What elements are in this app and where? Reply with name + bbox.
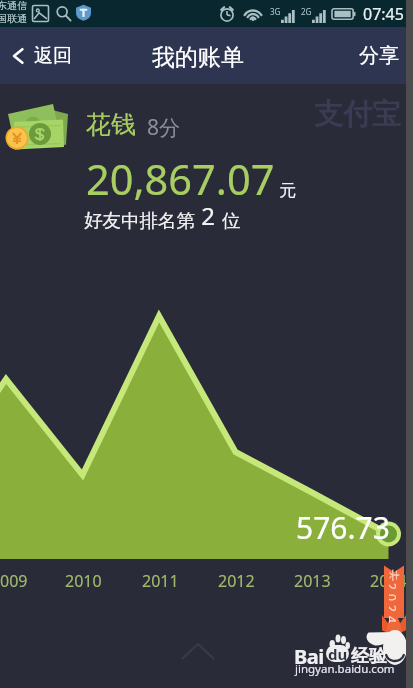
staticText: 2024 bbox=[370, 570, 407, 592]
button[interactable]: 分享 bbox=[347, 27, 411, 84]
staticText: 2G bbox=[301, 6, 312, 17]
staticText: 2 bbox=[389, 605, 400, 612]
staticText: 位 bbox=[222, 209, 241, 232]
staticText: 分享 bbox=[359, 43, 399, 68]
staticText: 576.73 bbox=[296, 507, 390, 548]
staticText: 国联通 bbox=[0, 12, 27, 25]
staticText: 009 bbox=[0, 570, 28, 592]
staticText: 2012 bbox=[218, 570, 255, 592]
button[interactable]: 返回 bbox=[0, 27, 84, 84]
staticText: jingyan.baidu.com bbox=[295, 661, 395, 677]
staticText: du bbox=[328, 645, 348, 661]
staticText: 2011 bbox=[142, 570, 179, 592]
staticText: 经验 bbox=[351, 645, 387, 668]
staticText: 2010 bbox=[65, 570, 102, 592]
staticText: 东通信 bbox=[0, 0, 27, 12]
staticText: 20,867.07 bbox=[86, 151, 275, 208]
staticText: 8分 bbox=[147, 113, 181, 142]
staticText: 支付宝 bbox=[314, 96, 401, 133]
button[interactable]: Scroll to top bbox=[172, 634, 224, 668]
staticText: 07:45 bbox=[363, 3, 404, 25]
staticText: 2 bbox=[389, 583, 400, 590]
staticText: 4 bbox=[389, 616, 400, 623]
staticText: 花钱 bbox=[86, 109, 136, 140]
staticText: 去 bbox=[389, 569, 400, 581]
staticText: 0 bbox=[389, 594, 400, 601]
staticText: 2 bbox=[195, 199, 222, 232]
staticText: 我的账单 bbox=[152, 43, 244, 72]
staticText: 元 bbox=[279, 180, 296, 201]
staticText: 好友中排名第 bbox=[84, 209, 195, 232]
staticText: 返回 bbox=[34, 44, 72, 68]
staticText: Bai bbox=[294, 643, 324, 670]
staticText: 3G bbox=[270, 6, 281, 17]
staticText: 2013 bbox=[294, 570, 331, 592]
